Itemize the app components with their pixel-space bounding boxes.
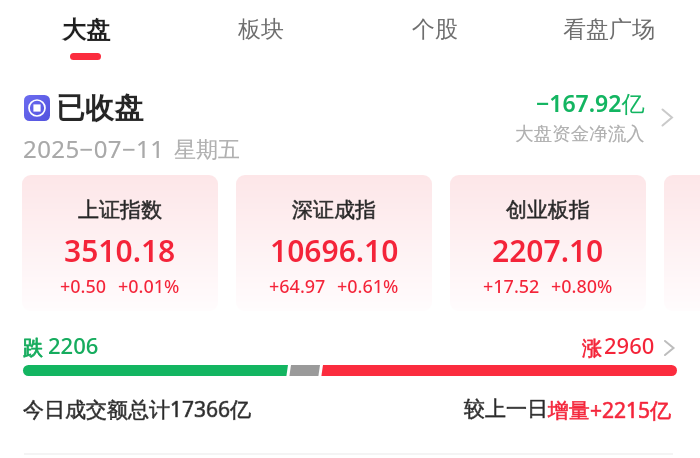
button[interactable]: 上证指数 [22,175,218,311]
staticText: 今日成交额总计17366亿 [23,395,252,424]
staticText: 10696.10 [270,230,399,271]
button[interactable]: 板块 [224,9,298,50]
staticText: 星期五 [174,136,240,164]
button[interactable]: 创业板指 [450,175,646,311]
staticText: 涨 [582,336,602,361]
staticText: 看盘广场 [563,15,655,44]
staticText: 较上一日 [464,396,548,422]
staticText: 大盘资金净流入 [515,122,645,145]
button[interactable]: 看盘广场 [549,9,669,50]
staticText: +0.61% [337,274,399,299]
staticText: 板块 [238,15,284,44]
staticText: 创业板指 [506,197,590,223]
staticText: 上证指数 [78,197,162,223]
staticText: +64.97 [269,274,326,299]
button[interactable]: −167.92亿 [495,87,645,145]
staticText: 2025−07−11 [23,132,165,165]
staticText: 2207.10 [492,230,604,271]
staticText: 上证指数 [78,197,162,223]
other: 查看大盘资金净流入详情 [658,104,678,130]
staticText: 创业板指 [506,197,590,223]
staticText: 深证成指 [292,197,376,223]
staticText: 2206 [48,330,99,360]
button[interactable]: 涨 [582,331,655,361]
staticText: 较上一日 [464,396,548,422]
button[interactable]: 跌 [23,331,99,361]
staticText: 增量+2215亿 [548,396,672,425]
staticText: 2960 [604,330,655,360]
staticText: 增量+2215亿 [548,396,672,425]
staticText: 跌 [23,336,43,361]
staticText: +17.52 [483,274,540,299]
staticText: 深证成指 [292,197,376,223]
staticText: 涨 [582,336,602,361]
staticText: 大盘 [62,15,110,45]
staticText: +0.80% [551,274,613,299]
staticText: 今日成交额总计17366亿 [23,395,252,424]
button[interactable]: 个股 [398,9,472,50]
staticText: −167.92亿 [536,87,645,118]
button[interactable]: 大盘 [48,9,124,51]
button[interactable]: 深证成指 [236,175,432,311]
staticText: 已收盘 [56,90,143,127]
staticText: 个股 [412,15,458,44]
staticText: +0.50 [60,274,107,299]
other: 查看涨跌家数详情 [660,337,678,359]
staticText: 3510.18 [64,230,176,271]
staticText: 跌 [23,336,43,361]
staticText: +0.01% [118,274,180,299]
